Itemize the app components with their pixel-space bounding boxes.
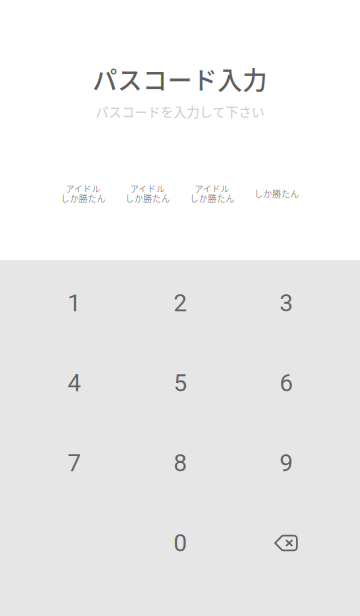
button[interactable]: 1 [21,263,127,343]
staticText: しか勝たん [190,192,235,204]
staticText: 7 [67,449,80,477]
staticText: 6 [279,369,292,397]
button[interactable]: Delete [233,503,339,583]
staticText: アイドル [130,182,165,195]
staticText: アイドル [195,182,230,195]
button[interactable]: 4 [21,343,127,423]
staticText: 0 [173,529,186,557]
button[interactable]: 2 [127,263,233,343]
button[interactable]: 7 [21,423,127,503]
staticText: しか勝たん [125,192,170,204]
staticText: パスコード入力 [92,61,267,97]
staticText: 5 [173,369,186,397]
button[interactable]: 5 [127,343,233,423]
button[interactable]: 8 [127,423,233,503]
staticText: 2 [173,289,186,317]
button[interactable]: 0 [127,503,233,583]
button[interactable]: 6 [233,343,339,423]
staticText: 4 [67,369,80,397]
staticText: 3 [279,289,292,317]
button[interactable]: 9 [233,423,339,503]
staticText: しか勝たん [61,192,106,204]
staticText: パスコードを入力して下さい [95,102,264,120]
staticText: 1 [67,289,80,317]
staticText: アイドル [66,182,101,195]
button[interactable]: 3 [233,263,339,343]
staticText: 8 [173,449,186,477]
staticText: しか勝たん [254,187,299,200]
staticText: 9 [279,449,292,477]
